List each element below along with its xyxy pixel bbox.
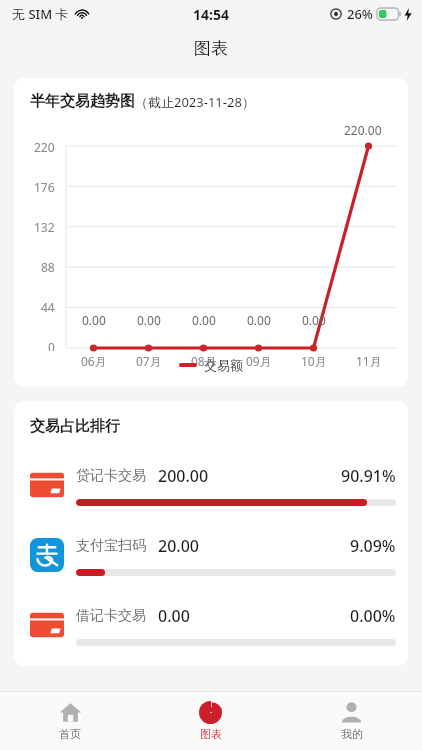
staticText: 10月 [301,353,327,369]
staticText: 90.91% [341,465,396,487]
staticText: 交易占比排行 [30,417,120,436]
staticText: 176 [34,179,55,195]
staticText: （截止2023-11-28） [135,93,255,111]
staticText: 0 [48,339,55,351]
staticText: 0.00 [82,312,106,328]
staticText: 09月 [246,353,272,369]
button[interactable]: 借记卡交易 [14,590,408,660]
staticText: 0.00 [158,605,190,627]
staticText: 0.00 [247,312,271,328]
button[interactable]: 我的 [281,692,422,750]
staticText: 图表 [194,38,228,59]
staticText: 11月 [356,353,382,369]
staticText: 贷记卡交易 [76,467,146,485]
staticText: 0.00 [192,312,216,328]
staticText: 20.00 [158,535,199,557]
button[interactable]: 图表 [140,692,281,750]
staticText: 06月 [81,353,107,369]
button[interactable]: 支付宝扫码 [14,520,408,590]
staticText: 132 [34,219,55,235]
staticText: 88 [41,259,55,275]
staticText: 200.00 [158,465,209,487]
staticText: 无 SIM 卡 [12,5,69,23]
staticText: 0.00% [350,605,396,627]
staticText: 0.00 [137,312,161,328]
staticText: 44 [41,299,55,315]
staticText: 220.00 [344,122,382,138]
staticText: 26% [347,5,373,23]
staticText: 14:54 [193,5,229,24]
staticText: 07月 [136,353,162,369]
staticText: 图表 [200,727,222,741]
staticText: 借记卡交易 [76,607,146,625]
staticText: 首页 [59,727,81,741]
staticText: 08月 [191,353,217,369]
staticText: 0.00 [302,312,326,328]
staticText: 交易额 [204,357,243,373]
staticText: 220 [34,139,55,155]
staticText: 9.09% [350,535,396,557]
button[interactable]: 首页 [0,692,140,750]
button[interactable]: 贷记卡交易 [14,450,408,520]
staticText: 我的 [341,727,363,741]
staticText: 半年交易趋势图 [30,92,135,111]
staticText: 支付宝扫码 [76,537,146,555]
